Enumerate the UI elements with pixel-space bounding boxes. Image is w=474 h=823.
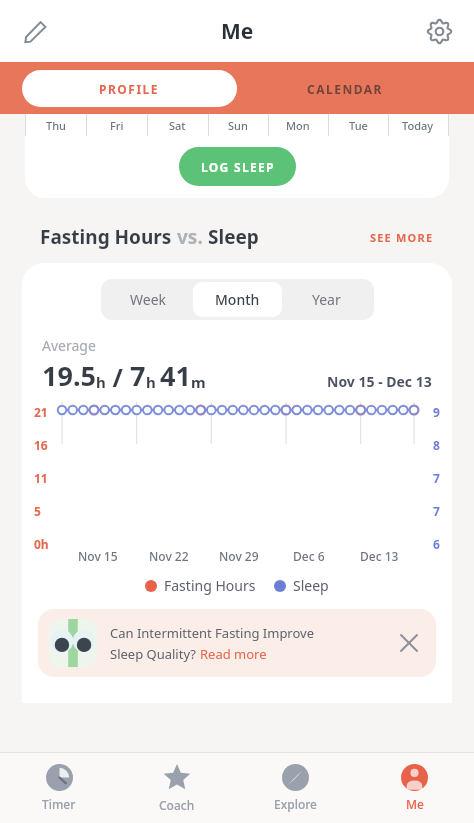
staticText: Nov 15 (78, 548, 118, 564)
staticText: CALENDAR (307, 81, 383, 97)
button[interactable]: Can Intermittent Fasting Improve (38, 609, 436, 677)
staticText: Read more (200, 645, 267, 663)
staticText: h (96, 372, 106, 392)
staticText: PROFILE (99, 81, 160, 97)
button[interactable]: Edit profile (12, 8, 58, 54)
button[interactable]: Settings (416, 8, 462, 54)
button[interactable]: SEE MORE (366, 226, 438, 249)
button[interactable]: Mon (268, 114, 328, 136)
staticText: Today (402, 118, 434, 133)
staticText: Sun (228, 118, 248, 133)
staticText: Thu (46, 118, 66, 133)
staticText: 21 (34, 404, 48, 420)
staticText: Sleep (293, 576, 329, 595)
staticText: Tue (349, 118, 368, 133)
staticText: 41 (160, 357, 191, 394)
staticText: Week (130, 290, 167, 309)
staticText: Coach (159, 797, 195, 813)
staticText: Me (221, 17, 254, 46)
staticText: Sat (169, 118, 186, 133)
button[interactable]: CALENDAR (237, 70, 452, 107)
staticText: Dec 13 (360, 548, 399, 564)
staticText: Average (42, 336, 96, 355)
staticText: Nov 22 (149, 548, 189, 564)
button[interactable]: Year (282, 282, 371, 317)
button[interactable]: Sat (147, 114, 208, 136)
staticText: LOG SLEEP (201, 159, 275, 175)
staticText: Timer (42, 796, 76, 812)
staticText: vs. (177, 224, 208, 250)
staticText: 0h (34, 536, 49, 552)
staticText: 7 (433, 503, 440, 519)
staticText: Explore (274, 796, 317, 812)
staticText: Month (215, 290, 260, 309)
button[interactable]: Fri (86, 114, 147, 136)
staticText: 9 (433, 404, 440, 420)
button[interactable]: Me (355, 753, 474, 823)
staticText: Nov 15 - Dec 13 (327, 372, 432, 391)
button[interactable]: Tue (328, 114, 388, 136)
staticText: / (106, 360, 130, 394)
staticText: Mon (286, 118, 310, 133)
staticText: Sleep Quality? (110, 645, 200, 663)
button[interactable]: Coach (118, 753, 236, 823)
staticText: Nov 29 (219, 548, 259, 564)
button[interactable]: Dismiss (393, 627, 425, 659)
button[interactable]: LOG SLEEP (179, 147, 296, 186)
button[interactable]: Month (193, 282, 282, 317)
staticText: Dec 6 (293, 548, 325, 564)
staticText: 6 (433, 536, 440, 552)
staticText: Fri (110, 118, 124, 133)
button[interactable]: Timer (0, 753, 118, 823)
staticText: Me (406, 796, 424, 812)
button[interactable]: Thu (25, 114, 86, 136)
button[interactable]: Today (388, 114, 448, 136)
staticText: 19.5 (42, 357, 96, 394)
staticText: Fasting Hours (40, 224, 177, 250)
staticText: 11 (34, 470, 48, 486)
button[interactable]: Explore (236, 753, 355, 823)
button[interactable]: Week (104, 282, 193, 317)
staticText: 16 (34, 437, 48, 453)
staticText: Can Intermittent Fasting Improve (110, 624, 315, 642)
staticText: Fasting Hours (164, 576, 256, 595)
staticText: Year (312, 290, 341, 309)
staticText: SEE MORE (370, 230, 434, 245)
staticText: m (191, 372, 206, 392)
staticText: h (146, 372, 160, 392)
staticText: 8 (433, 437, 440, 453)
staticText: Sleep (208, 224, 259, 250)
button[interactable]: Sun (208, 114, 268, 136)
staticText: 5 (34, 503, 41, 519)
staticText: 7 (130, 357, 146, 394)
button[interactable]: PROFILE (22, 70, 237, 107)
staticText: 7 (433, 470, 440, 486)
